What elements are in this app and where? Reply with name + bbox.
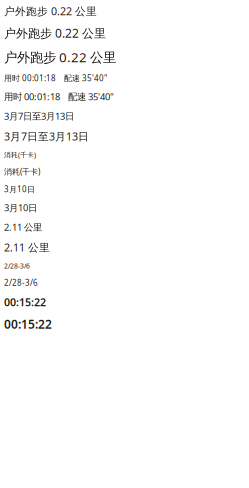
staticText: 3月7日至3月13日: [4, 110, 74, 122]
staticText: 3月10日: [4, 184, 35, 194]
staticText: 消耗(千卡): [4, 166, 40, 177]
staticText: 户外跑步 0.22 公里: [4, 25, 106, 41]
staticText: 2/28-3/6: [4, 277, 38, 288]
staticText: 2.11 公里: [4, 221, 42, 233]
staticText: 消耗(千卡): [4, 150, 36, 159]
staticText: 2/28-3/6: [4, 261, 30, 270]
staticText: 00:15:22: [4, 316, 52, 332]
staticText: 户外跑步 0.22 公里: [4, 48, 116, 66]
staticText: 00:15:22: [4, 295, 46, 309]
staticText: 2.11 公里: [4, 240, 50, 254]
staticText: 3月7日至3月13日: [4, 129, 89, 143]
staticText: 3月10日: [4, 201, 37, 214]
staticText: 户外跑步 0.22 公里: [4, 4, 97, 18]
staticText: 用时 00:01:18 配速 35'40": [4, 73, 107, 83]
staticText: 用时 00:01:18 配速 35'40": [4, 90, 114, 103]
